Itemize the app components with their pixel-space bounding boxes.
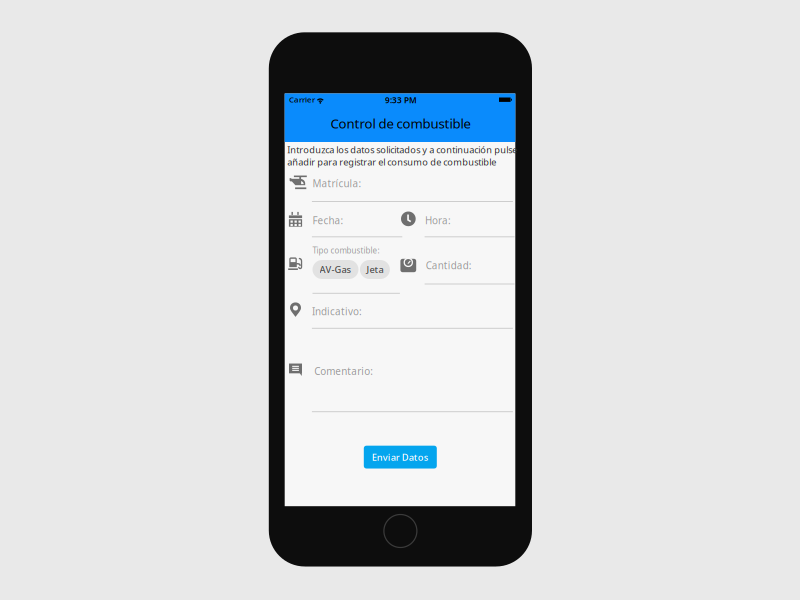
- staticText: Indicativo:: [312, 305, 362, 318]
- staticText: Jeta: [366, 263, 383, 276]
- staticText: 9:33 PM: [385, 94, 417, 105]
- staticText: Cantidad:: [426, 259, 472, 272]
- button[interactable]: AV-Gas: [312, 260, 358, 279]
- staticText: AV-Gas: [319, 263, 351, 276]
- staticText: Fecha:: [313, 214, 344, 227]
- staticText: Comentario:: [314, 364, 373, 378]
- button[interactable]: Enviar Datos: [364, 446, 437, 468]
- button[interactable]: Jeta: [360, 260, 390, 279]
- staticText: Enviar Datos: [372, 451, 429, 463]
- staticText: Tipo combustible:: [313, 245, 380, 256]
- staticText: Matrícula:: [313, 177, 362, 190]
- staticText: Introduzca los datos solicitados y a con…: [287, 144, 517, 168]
- staticText: Control de combustible: [330, 114, 470, 132]
- staticText: Hora:: [425, 214, 451, 227]
- staticText: Carrier: [289, 94, 315, 104]
